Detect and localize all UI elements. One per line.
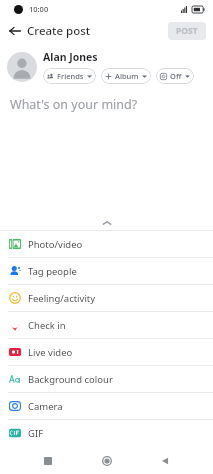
- button[interactable]: Album: [101, 68, 151, 84]
- button[interactable]: Check in: [0, 312, 213, 338]
- button[interactable]: Recents: [37, 450, 59, 472]
- staticText: Photo/video: [28, 238, 83, 251]
- staticText: What's on your mind?: [10, 96, 138, 113]
- button[interactable]: Camera: [0, 393, 213, 419]
- button[interactable]: Feeling/activity: [0, 285, 213, 311]
- button[interactable]: Off: [156, 68, 194, 84]
- staticText: Album: [115, 71, 139, 81]
- staticText: Alan Jones: [43, 50, 98, 64]
- button[interactable]: What's on your mind?: [0, 84, 213, 216]
- button[interactable]: GIF: [0, 420, 213, 446]
- button[interactable]: Back: [5, 21, 25, 41]
- staticText: Live video: [28, 346, 73, 359]
- button[interactable]: Profile picture: [7, 52, 37, 82]
- button[interactable]: Photo/video: [0, 231, 213, 257]
- staticText: Background colour: [28, 373, 113, 386]
- staticText: Create post: [27, 23, 91, 39]
- staticText: 10:00: [29, 4, 49, 14]
- staticText: Camera: [28, 400, 63, 413]
- staticText: Friends: [57, 71, 84, 81]
- button[interactable]: POST: [168, 22, 206, 40]
- staticText: POST: [176, 25, 198, 37]
- button[interactable]: Live video: [0, 339, 213, 365]
- staticText: GIF: [28, 427, 44, 440]
- staticText: Off: [170, 71, 182, 81]
- button[interactable]: Tag people: [0, 258, 213, 284]
- button[interactable]: Back: [154, 450, 176, 472]
- staticText: Feeling/activity: [28, 292, 96, 305]
- button[interactable]: Home: [96, 450, 118, 472]
- button[interactable]: Background colour: [0, 366, 213, 392]
- button[interactable]: Collapse: [0, 216, 213, 230]
- staticText: Tag people: [28, 265, 77, 278]
- button[interactable]: Friends: [43, 68, 96, 84]
- staticText: Check in: [28, 319, 66, 332]
